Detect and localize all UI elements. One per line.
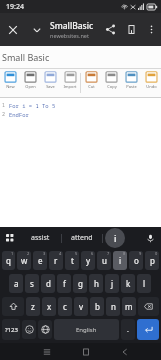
button[interactable]: i	[113, 251, 127, 270]
button[interactable]: English	[54, 319, 119, 340]
button[interactable]: l	[137, 274, 151, 293]
button[interactable]: Paste	[121, 69, 141, 97]
button[interactable]: assist	[20, 227, 61, 249]
staticText: assist	[31, 233, 50, 243]
staticText: r	[54, 255, 58, 266]
button[interactable]: .	[121, 319, 135, 340]
staticText: a	[14, 278, 19, 289]
button[interactable]: Undo	[141, 69, 161, 97]
staticText: ?123	[5, 326, 18, 334]
button[interactable]: k	[121, 274, 135, 293]
staticText: p	[150, 255, 155, 266]
button[interactable]: Save	[40, 69, 60, 97]
button[interactable]: ?123	[2, 319, 20, 340]
staticText: e	[38, 255, 43, 266]
staticText: Undo	[146, 84, 157, 89]
staticText: o	[134, 255, 139, 266]
button[interactable]: Import	[60, 69, 80, 97]
button[interactable]: p	[145, 251, 159, 270]
button[interactable]: Backspace	[138, 297, 159, 316]
staticText: b	[95, 301, 100, 312]
staticText: 3	[43, 251, 46, 256]
button[interactable]: m	[122, 297, 136, 316]
button[interactable]: More options	[142, 20, 161, 39]
staticText: u	[102, 255, 107, 266]
staticText: 1	[2, 102, 9, 109]
button[interactable]: r	[49, 251, 63, 270]
button[interactable]: Emoji	[22, 320, 36, 339]
staticText: z	[31, 301, 35, 312]
staticText: x	[47, 301, 52, 312]
staticText: 2	[27, 251, 30, 256]
button[interactable]: d	[41, 274, 55, 293]
button[interactable]: SmallBasic	[50, 20, 100, 39]
staticText: 8	[123, 251, 126, 256]
staticText: q	[6, 255, 11, 266]
button[interactable]: Voice input	[139, 227, 161, 249]
button[interactable]: Recents	[27, 343, 66, 360]
button[interactable]: t	[65, 251, 79, 270]
button[interactable]: h	[89, 274, 103, 293]
button[interactable]: Copy	[101, 69, 121, 97]
staticText: English	[76, 326, 97, 334]
staticText: i	[114, 232, 117, 244]
button[interactable]: q	[2, 251, 15, 270]
staticText: .	[127, 325, 129, 335]
staticText: 0	[155, 251, 158, 256]
staticText: t	[71, 255, 74, 266]
staticText: d	[46, 278, 51, 289]
staticText: For i = 1 To 5	[9, 102, 56, 109]
staticText: 5	[75, 251, 78, 256]
button[interactable]: Collapse	[26, 19, 48, 41]
button[interactable]: Share	[100, 19, 121, 40]
button[interactable]: Bookmark	[121, 19, 142, 40]
button[interactable]: f	[57, 274, 71, 293]
button[interactable]: x	[42, 297, 56, 316]
button[interactable]: c	[58, 297, 72, 316]
staticText: s	[30, 278, 34, 289]
staticText: Paste	[126, 84, 137, 89]
button[interactable]: n	[106, 297, 120, 316]
staticText: 4	[59, 251, 62, 256]
staticText: i	[119, 255, 122, 266]
button[interactable]: Close	[0, 17, 26, 43]
staticText: y	[86, 255, 91, 266]
button[interactable]: Shift	[2, 297, 24, 316]
button[interactable]: o	[129, 251, 143, 270]
button[interactable]: Home	[66, 343, 105, 360]
staticText: w	[21, 255, 28, 266]
staticText: c	[63, 301, 67, 312]
button[interactable]: u	[97, 251, 111, 270]
staticText: 2	[2, 111, 9, 118]
staticText: Open	[25, 84, 36, 89]
button[interactable]: y	[81, 251, 95, 270]
button[interactable]: b	[90, 297, 104, 316]
button[interactable]: Cut	[81, 69, 101, 97]
staticText: n	[111, 301, 116, 312]
button[interactable]: Enter	[137, 319, 159, 340]
staticText: Small Basic	[2, 51, 50, 63]
button[interactable]: New	[0, 69, 20, 97]
button[interactable]: Back	[105, 343, 144, 360]
button[interactable]: attend	[62, 227, 102, 249]
button[interactable]: Keyboard toolbar	[0, 227, 20, 249]
staticText: SmallBasic	[50, 20, 94, 32]
button[interactable]: w	[17, 251, 31, 270]
button[interactable]: Change language	[38, 320, 52, 339]
button[interactable]: a	[9, 274, 23, 293]
staticText: Save	[46, 84, 55, 89]
button[interactable]: j	[105, 274, 119, 293]
staticText: newebsites.net	[50, 32, 89, 39]
button[interactable]: Open	[20, 69, 40, 97]
staticText: h	[94, 278, 99, 289]
staticText: Copy	[107, 84, 117, 89]
staticText: 6	[91, 251, 94, 256]
staticText: 1	[11, 251, 14, 256]
button[interactable]: z	[26, 297, 40, 316]
button[interactable]: g	[73, 274, 87, 293]
staticText: New	[6, 84, 15, 89]
staticText: l	[143, 278, 146, 289]
button[interactable]: v	[74, 297, 88, 316]
button[interactable]: s	[25, 274, 39, 293]
button[interactable]: e	[33, 251, 47, 270]
